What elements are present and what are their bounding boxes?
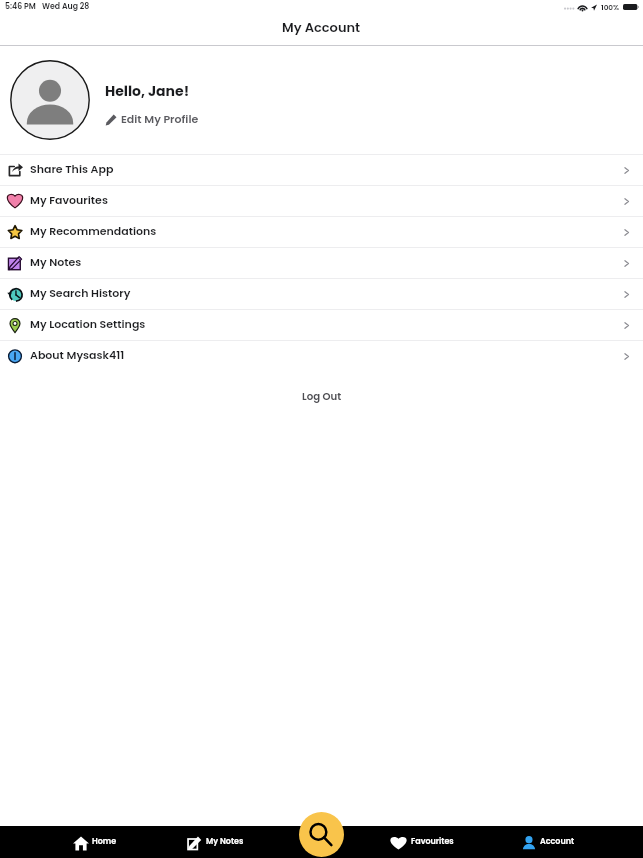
button[interactable]: My Favourites: [0, 186, 643, 216]
staticText: My Notes: [206, 836, 244, 847]
staticText: My Search History: [30, 285, 131, 300]
staticText: Favourites: [411, 836, 454, 847]
staticText: About Mysask411: [30, 347, 125, 362]
button[interactable]: Share This App: [0, 155, 643, 185]
staticText: Account: [540, 836, 575, 847]
button[interactable]: Search: [299, 812, 344, 857]
button[interactable]: Home: [73, 826, 117, 858]
staticText: My Location Settings: [30, 316, 146, 331]
button[interactable]: Favourites: [390, 826, 454, 858]
staticText: My Favourites: [30, 192, 108, 207]
staticText: Edit My Profile: [121, 111, 199, 126]
button[interactable]: My Notes: [187, 826, 244, 858]
button[interactable]: My Location Settings: [0, 310, 643, 340]
button[interactable]: About Mysask411: [0, 341, 643, 371]
button[interactable]: Hello, Jane!: [0, 46, 643, 154]
staticText: Wed Aug 28: [42, 1, 90, 12]
staticText: My Notes: [30, 254, 82, 269]
staticText: 100%: [601, 2, 620, 12]
staticText: Hello, Jane!: [105, 81, 190, 101]
button[interactable]: Account: [522, 826, 575, 858]
button[interactable]: My Notes: [0, 248, 643, 278]
staticText: My Account: [282, 18, 361, 36]
staticText: Share This App: [30, 161, 114, 176]
button[interactable]: My Search History: [0, 279, 643, 309]
staticText: My Recommendations: [30, 223, 157, 238]
button[interactable]: Log Out: [0, 371, 643, 425]
staticText: Home: [92, 836, 117, 847]
button[interactable]: My Recommendations: [0, 217, 643, 247]
staticText: Log Out: [302, 389, 342, 403]
staticText: 5:46 PM: [5, 1, 36, 12]
